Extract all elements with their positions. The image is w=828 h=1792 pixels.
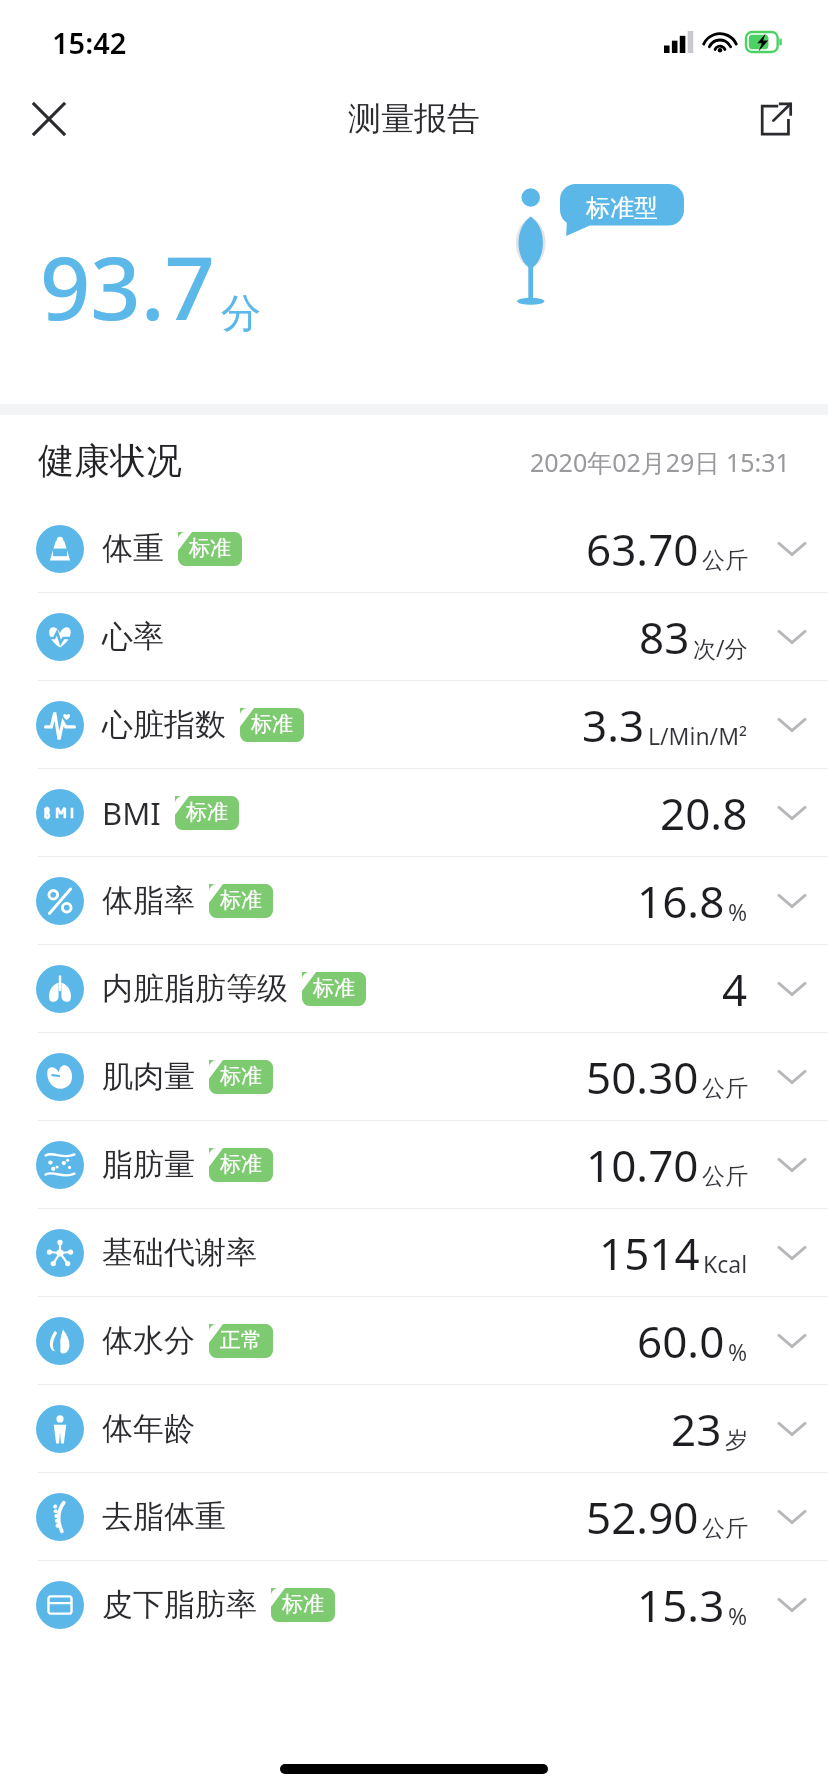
button[interactable]: Expand 肌肉量 — [770, 1055, 814, 1099]
staticText: 标准 — [220, 1151, 262, 1177]
button[interactable]: Expand 心脏指数 — [770, 703, 814, 747]
staticText: BMI — [102, 792, 161, 834]
button[interactable]: Expand 心率 — [770, 615, 814, 659]
staticText: 15:42 — [52, 23, 127, 62]
staticText: 脂肪量 — [102, 1145, 195, 1184]
staticText: 60.0 — [637, 1311, 725, 1371]
staticText: 体重 — [102, 529, 164, 568]
staticText: 去脂体重 — [102, 1497, 226, 1536]
staticText: 93.7 — [40, 226, 215, 346]
button[interactable]: Expand BMI — [770, 791, 814, 835]
staticText: 标准 — [251, 711, 293, 737]
button[interactable]: Expand 皮下脂肪率 — [770, 1583, 814, 1627]
button[interactable]: 体脂率 — [0, 857, 828, 944]
staticText: 标准 — [220, 1063, 262, 1089]
staticText: 10.70 — [586, 1135, 699, 1195]
staticText: 4 — [722, 959, 748, 1019]
button[interactable]: Expand 脂肪量 — [770, 1143, 814, 1187]
staticText: % — [728, 896, 748, 927]
button[interactable]: 心脏指数 — [0, 681, 828, 768]
staticText: L/Min/M² — [648, 720, 748, 751]
staticText: 20.8 — [660, 783, 748, 843]
staticText: 基础代谢率 — [102, 1233, 257, 1272]
button[interactable]: 体年龄 — [0, 1385, 828, 1472]
button[interactable]: Expand 体重 — [770, 527, 814, 571]
button[interactable]: Expand 体脂率 — [770, 879, 814, 923]
staticText: 测量报告 — [348, 98, 480, 140]
button[interactable]: Close — [18, 88, 80, 150]
button[interactable]: 去脂体重 — [0, 1473, 828, 1560]
staticText: 公斤 — [702, 1162, 748, 1191]
staticText: 52.90 — [586, 1487, 699, 1547]
button[interactable]: 体重 — [0, 505, 828, 592]
staticText: 心脏指数 — [102, 705, 226, 744]
staticText: 3.3 — [582, 695, 645, 755]
button[interactable]: Share — [744, 88, 806, 150]
staticText: 正常 — [220, 1327, 262, 1353]
button[interactable]: Expand 内脏脂肪等级 — [770, 967, 814, 1011]
staticText: 标准 — [186, 799, 228, 825]
button[interactable]: 肌肉量 — [0, 1033, 828, 1120]
staticText: 体水分 — [102, 1321, 195, 1360]
staticText: 83 — [639, 607, 690, 667]
button[interactable]: 内脏脂肪等级 — [0, 945, 828, 1032]
button[interactable]: Expand 去脂体重 — [770, 1495, 814, 1539]
staticText: 2020年02月29日 15:31 — [530, 445, 790, 479]
staticText: % — [728, 1336, 748, 1367]
staticText: 内脏脂肪等级 — [102, 969, 288, 1008]
staticText: 16.8 — [637, 871, 725, 931]
staticText: 标准 — [220, 887, 262, 913]
button[interactable]: 体水分 — [0, 1297, 828, 1384]
staticText: 肌肉量 — [102, 1057, 195, 1096]
staticText: 50.30 — [586, 1047, 699, 1107]
staticText: 标准 — [313, 975, 355, 1001]
staticText: % — [728, 1600, 748, 1631]
button[interactable]: Expand 基础代谢率 — [770, 1231, 814, 1275]
staticText: 23 — [671, 1399, 722, 1459]
staticText: 标准 — [282, 1591, 324, 1617]
button[interactable]: Expand 体水分 — [770, 1319, 814, 1363]
staticText: 公斤 — [702, 546, 748, 575]
staticText: 分 — [221, 288, 261, 338]
staticText: 心率 — [102, 617, 164, 656]
button[interactable]: BMI — [0, 769, 828, 856]
staticText: 标准 — [189, 535, 231, 561]
staticText: 岁 — [725, 1426, 748, 1455]
button[interactable]: 皮下脂肪率 — [0, 1561, 828, 1648]
button[interactable]: Expand 体年龄 — [770, 1407, 814, 1451]
button[interactable]: 心率 — [0, 593, 828, 680]
staticText: 皮下脂肪率 — [102, 1585, 257, 1624]
button[interactable]: 基础代谢率 — [0, 1209, 828, 1296]
staticText: 标准型 — [586, 193, 658, 223]
staticText: 公斤 — [702, 1514, 748, 1543]
staticText: 15.3 — [637, 1575, 725, 1635]
staticText: 次/分 — [693, 632, 748, 663]
staticText: 63.70 — [586, 519, 699, 579]
staticText: 1514 — [599, 1223, 700, 1283]
staticText: 体年龄 — [102, 1409, 195, 1448]
staticText: Kcal — [703, 1248, 748, 1279]
staticText: 体脂率 — [102, 881, 195, 920]
staticText: 公斤 — [702, 1074, 748, 1103]
staticText: 健康状况 — [38, 438, 182, 483]
button[interactable]: 脂肪量 — [0, 1121, 828, 1208]
